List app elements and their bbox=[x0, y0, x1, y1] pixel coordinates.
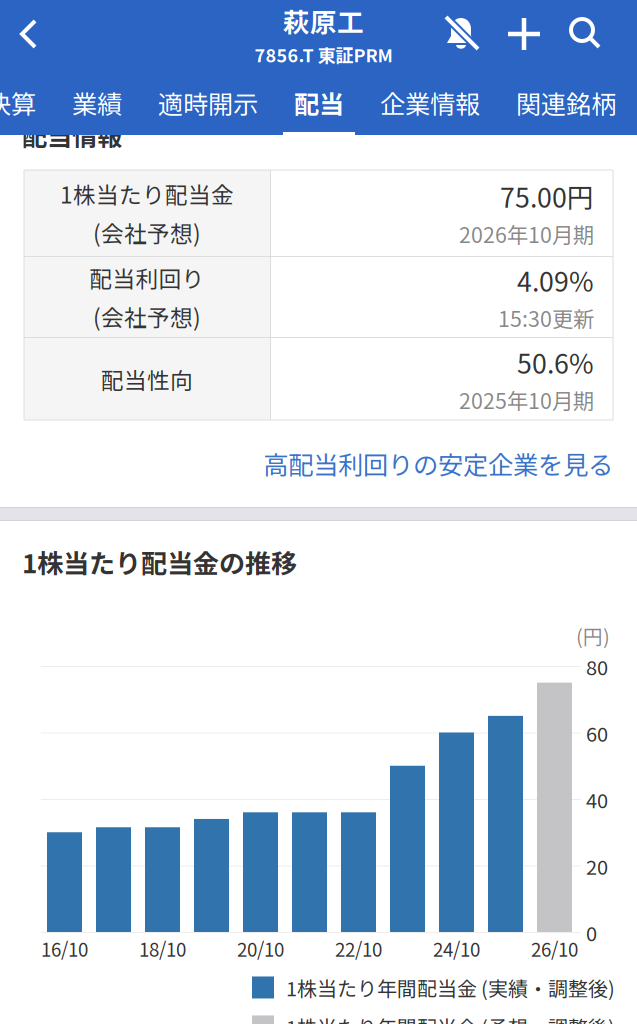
staticText: 適時開示 bbox=[158, 84, 258, 121]
staticText: 22/10 bbox=[335, 935, 382, 962]
staticText: 萩原工 bbox=[283, 2, 364, 40]
staticText: 15:30更新 bbox=[498, 302, 594, 333]
staticText: 20 bbox=[586, 851, 608, 880]
staticText: 40 bbox=[586, 785, 608, 814]
staticText: (会社予想) bbox=[93, 216, 201, 249]
button[interactable]: 決算 bbox=[0, 68, 54, 135]
staticText: 18/10 bbox=[139, 935, 186, 962]
staticText: 1株当たり配当金 bbox=[60, 177, 234, 210]
button[interactable]: 戻る bbox=[0, 0, 58, 68]
button[interactable]: 追加 bbox=[493, 0, 555, 68]
staticText: 7856.T 東証PRM bbox=[254, 41, 392, 67]
staticText: 75.00円 bbox=[500, 177, 594, 215]
staticText: 配当情報 bbox=[22, 117, 122, 153]
staticText: 2026年10月期 bbox=[459, 218, 594, 249]
button[interactable]: 高配当利回りの安定企業を見る bbox=[263, 445, 613, 482]
staticText: 企業情報 bbox=[380, 84, 480, 121]
staticText: 業績 bbox=[72, 84, 122, 121]
button[interactable]: 検索 bbox=[555, 0, 615, 68]
button[interactable]: 企業情報 bbox=[362, 68, 498, 135]
staticText: 関連銘柄 bbox=[516, 84, 616, 121]
staticText: 4.09% bbox=[517, 261, 594, 299]
button[interactable]: 関連銘柄 bbox=[498, 68, 634, 135]
staticText: 決算 bbox=[0, 84, 36, 121]
button[interactable]: 適時開示 bbox=[140, 68, 276, 135]
staticText: 26/10 bbox=[531, 935, 578, 962]
staticText: (会社予想) bbox=[93, 300, 201, 333]
button[interactable]: 配当 bbox=[276, 68, 362, 135]
staticText: 20/10 bbox=[237, 935, 284, 962]
staticText: 16/10 bbox=[41, 935, 88, 962]
staticText: 1株当たり配当金の推移 bbox=[22, 543, 297, 581]
button[interactable]: 通知 bbox=[431, 0, 493, 68]
staticText: 配当利回り bbox=[89, 261, 204, 294]
staticText: 1株当たり年間配当金 (予想・調整後) bbox=[286, 1012, 615, 1024]
staticText: 24/10 bbox=[433, 935, 480, 962]
staticText: 配当 bbox=[294, 84, 344, 121]
staticText: 0 bbox=[586, 918, 597, 947]
staticText: (円) bbox=[576, 621, 610, 650]
staticText: 50.6% bbox=[517, 343, 594, 381]
staticText: 高配当利回りの安定企業を見る bbox=[263, 445, 613, 482]
staticText: 1株当たり年間配当金 (実績・調整後) bbox=[286, 973, 615, 1002]
staticText: 60 bbox=[586, 718, 608, 747]
staticText: 2025年10月期 bbox=[459, 384, 594, 415]
staticText: 配当性向 bbox=[101, 363, 193, 395]
button[interactable]: 業績 bbox=[54, 68, 140, 135]
staticText: 80 bbox=[586, 652, 608, 681]
